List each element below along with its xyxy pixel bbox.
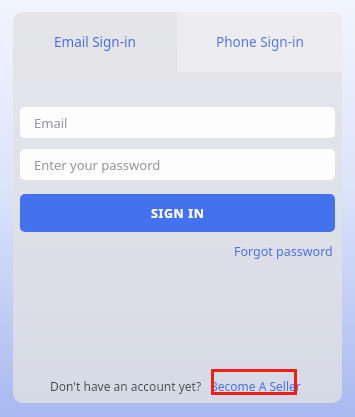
- button[interactable]: Enter your password: [20, 149, 335, 180]
- button[interactable]: Forgot password: [232, 241, 335, 262]
- staticText: Forgot password: [234, 243, 333, 260]
- staticText: Email Sign-in: [54, 33, 136, 51]
- staticText: Phone Sign-in: [216, 33, 304, 51]
- button[interactable]: Phone Sign-in: [177, 12, 342, 72]
- button[interactable]: Email: [20, 107, 335, 138]
- button[interactable]: Email Sign-in: [13, 12, 177, 72]
- staticText: Don't have an account yet?: [50, 378, 202, 394]
- other: Become A Seller highlight: [211, 369, 297, 395]
- staticText: Email: [34, 114, 68, 132]
- staticText: Enter your password: [34, 156, 161, 174]
- button[interactable]: Become A Seller: [206, 372, 305, 400]
- staticText: SIGN IN: [151, 205, 205, 222]
- button[interactable]: SIGN IN: [20, 194, 335, 232]
- staticText: Become A Seller: [210, 378, 301, 394]
